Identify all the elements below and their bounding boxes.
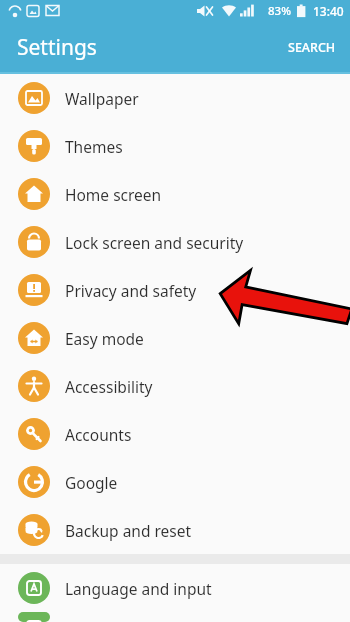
button[interactable]: SEARCH (274, 27, 350, 68)
staticText: 13:40 (313, 3, 344, 19)
staticText: Settings (17, 33, 97, 62)
staticText: Accounts (65, 424, 132, 445)
button[interactable]: Accounts (0, 410, 350, 458)
button[interactable]: Accessibility (0, 362, 350, 410)
staticText: Home screen (65, 184, 162, 205)
staticText: Wallpaper (65, 88, 139, 109)
button[interactable]: Backup and reset (0, 506, 350, 554)
staticText: Lock screen and security (65, 232, 244, 253)
staticText: Themes (65, 136, 123, 157)
staticText: Backup and reset (65, 520, 192, 541)
button[interactable]: Easy mode (0, 314, 350, 362)
staticText: 83% (268, 3, 291, 19)
button[interactable]: Google (0, 458, 350, 506)
staticText: Google (65, 472, 118, 493)
button[interactable]: Wallpaper (0, 74, 350, 122)
button[interactable]: Setting (0, 612, 350, 622)
staticText: Easy mode (65, 328, 144, 349)
button[interactable]: Language and input (0, 564, 350, 612)
staticText: SEARCH (288, 39, 336, 56)
staticText: Language and input (65, 578, 212, 599)
button[interactable]: Themes (0, 122, 350, 170)
button[interactable]: Lock screen and security (0, 218, 350, 266)
staticText: Accessibility (65, 376, 153, 397)
staticText: Privacy and safety (65, 280, 197, 301)
button[interactable]: Home screen (0, 170, 350, 218)
button[interactable]: Privacy and safety (0, 266, 350, 314)
